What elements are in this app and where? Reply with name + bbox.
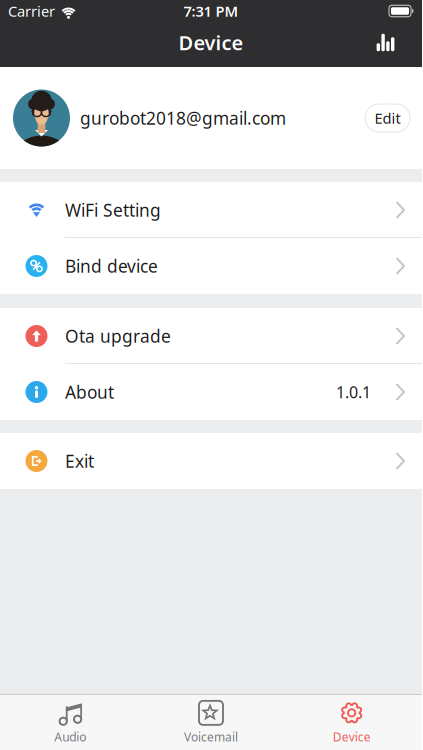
staticText: 7:31 PM bbox=[183, 1, 238, 21]
staticText: Device bbox=[333, 729, 371, 745]
button[interactable]: Edit bbox=[365, 104, 410, 132]
button[interactable]: Exit bbox=[0, 433, 422, 489]
staticText: gurobot2018@gmail.com bbox=[80, 106, 286, 129]
button[interactable]: Voicemail bbox=[141, 700, 281, 745]
button[interactable]: Statistics bbox=[377, 33, 394, 51]
staticText: Device bbox=[178, 29, 243, 56]
staticText: Voicemail bbox=[184, 729, 238, 745]
staticText: Carrier bbox=[8, 1, 55, 21]
staticText: Exit bbox=[65, 449, 94, 472]
button[interactable]: Ota upgrade bbox=[0, 308, 422, 364]
staticText: Ota upgrade bbox=[65, 324, 171, 347]
staticText: Audio bbox=[54, 729, 86, 745]
button[interactable]: About bbox=[0, 364, 422, 420]
staticText: Bind device bbox=[65, 254, 158, 277]
staticText: Edit bbox=[374, 108, 400, 128]
button[interactable]: Device bbox=[281, 700, 422, 745]
staticText: 1.0.1 bbox=[336, 381, 371, 403]
button[interactable]: WiFi Setting bbox=[0, 182, 422, 238]
button[interactable]: Bind device bbox=[0, 238, 422, 294]
staticText: WiFi Setting bbox=[65, 198, 161, 221]
button[interactable]: Audio bbox=[0, 700, 141, 745]
staticText: About bbox=[65, 380, 114, 403]
